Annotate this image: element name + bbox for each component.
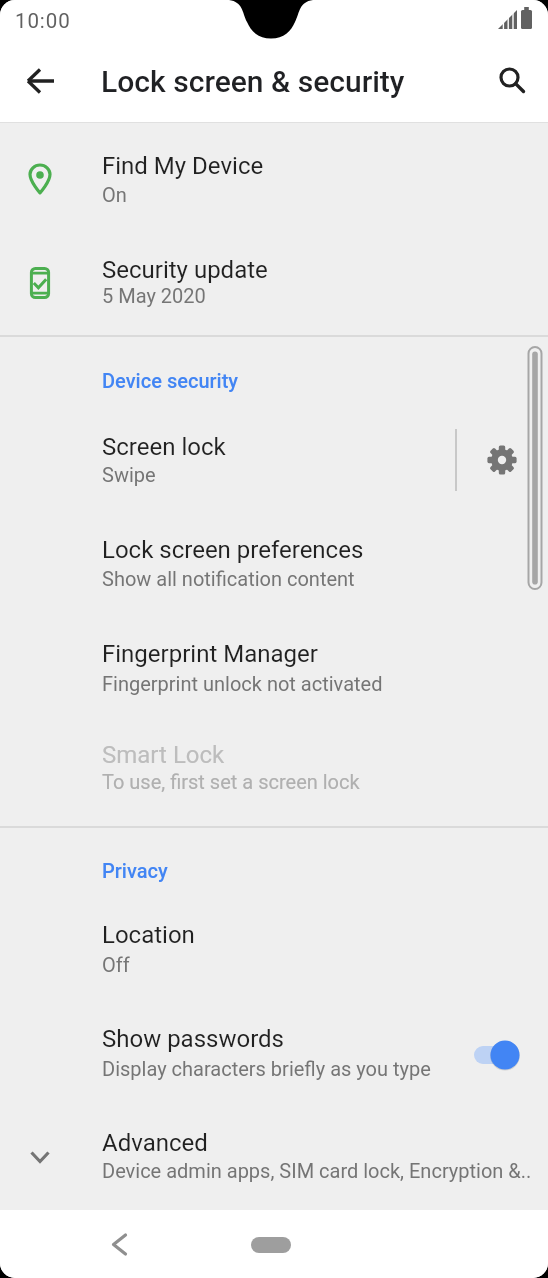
button[interactable]: Fingerprint Manager (0, 623, 548, 715)
staticText: Fingerprint unlock not activated (102, 672, 383, 695)
staticText: Show passwords (102, 1025, 285, 1053)
staticText: On (102, 183, 127, 206)
staticText: Fingerprint Manager (102, 640, 318, 668)
button[interactable]: Advanced (0, 1111, 548, 1205)
button[interactable] (470, 1038, 522, 1072)
button[interactable]: Location (0, 903, 548, 995)
staticText: Location (102, 921, 195, 949)
staticText: Display characters briefly as you type (102, 1057, 431, 1080)
staticText: Find My Device (102, 152, 264, 180)
button[interactable] (100, 1224, 140, 1264)
staticText: Swipe (102, 463, 156, 486)
staticText: Lock screen preferences (102, 536, 364, 564)
staticText: Lock screen & security (101, 64, 405, 99)
button[interactable]: Security update (0, 237, 548, 327)
staticText: Smart Lock (102, 741, 225, 769)
staticText: Device admin apps, SIM card lock, Encryp… (102, 1159, 532, 1182)
staticText: Privacy (102, 859, 168, 882)
button[interactable]: Find My Device (0, 133, 548, 223)
button[interactable]: Lock screen preferences (0, 519, 548, 611)
button[interactable] (251, 1237, 291, 1253)
button[interactable] (480, 438, 524, 482)
staticText: Device security (102, 369, 239, 392)
staticText: 5 May 2020 (102, 284, 206, 307)
button[interactable]: Screen lock (0, 415, 548, 507)
button[interactable]: Smart Lock (0, 727, 548, 819)
button[interactable] (19, 60, 63, 102)
staticText: 10:00 (15, 9, 71, 33)
staticText: Off (102, 953, 130, 976)
staticText: Show all notification content (102, 567, 355, 590)
button[interactable]: Show passwords (0, 1007, 548, 1099)
staticText: To use, first set a screen lock (102, 770, 360, 793)
staticText: Security update (102, 256, 268, 284)
staticText: Advanced (102, 1129, 208, 1157)
button[interactable] (488, 56, 532, 100)
staticText: Screen lock (102, 433, 226, 461)
